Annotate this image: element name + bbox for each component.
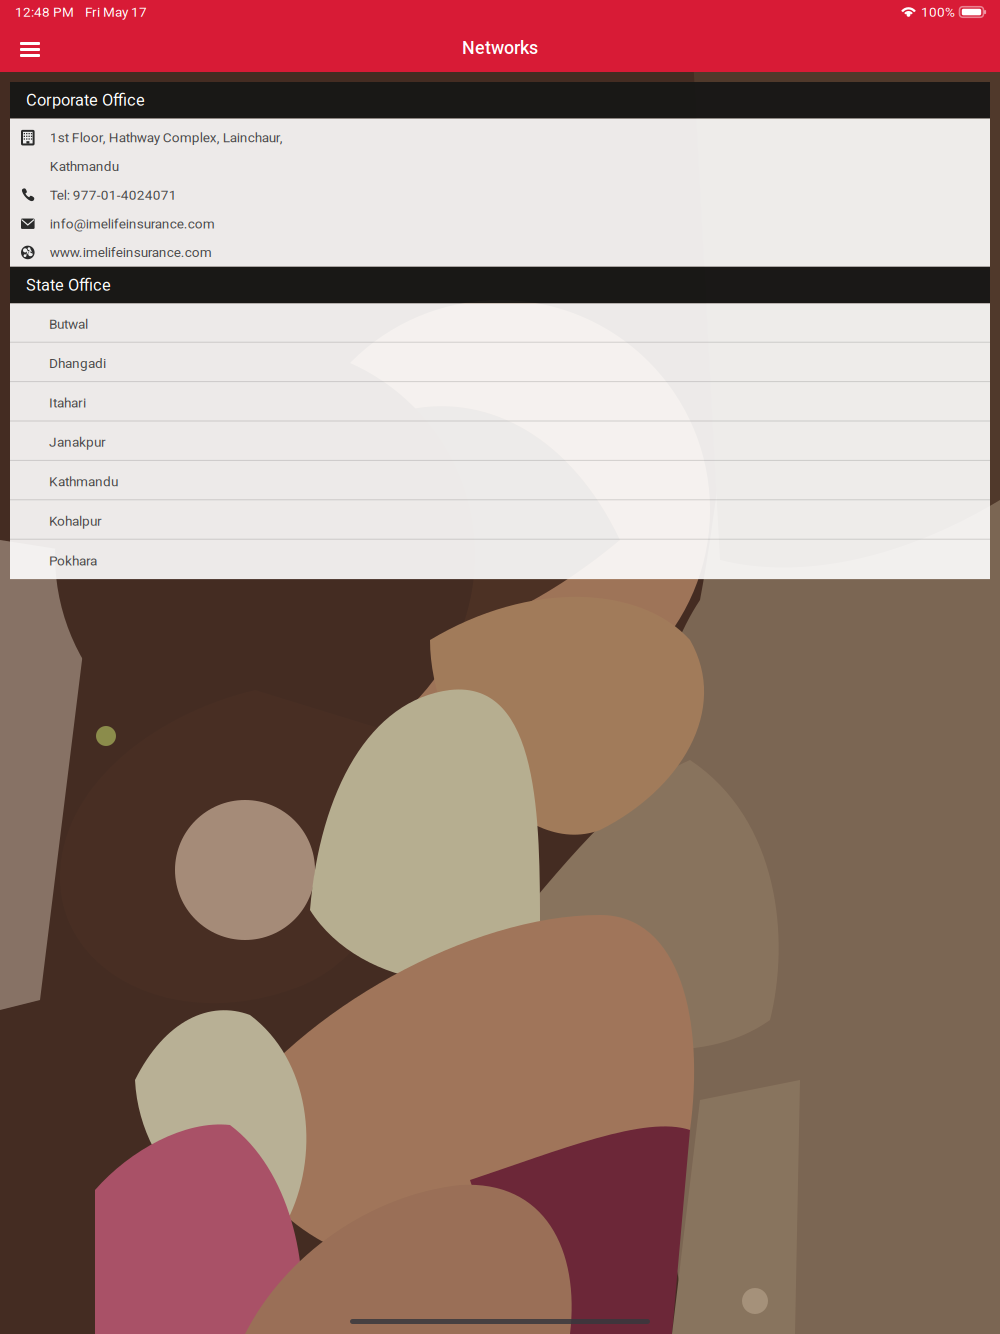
staticText: www.imelifeinsurance.com [50, 244, 212, 260]
staticText: 100% [921, 4, 955, 20]
button[interactable]: Menu [10, 24, 50, 72]
button[interactable]: Butwal [10, 303, 990, 343]
staticText: 12:48 PM [15, 4, 74, 20]
button[interactable]: Itahari [10, 382, 990, 421]
button[interactable]: Kathmandu [10, 461, 990, 500]
staticText: Tel: 977-01-4024071 [50, 187, 177, 203]
staticText: Janakpur [49, 434, 106, 450]
staticText: Pokhara [49, 553, 97, 569]
staticText: State Office [26, 275, 111, 295]
staticText: Networks [462, 37, 538, 58]
staticText: Fri May 17 [85, 4, 147, 20]
staticText: Kohalpur [49, 513, 102, 529]
staticText: Kathmandu [49, 474, 118, 489]
staticText: Kathmandu [50, 158, 119, 174]
button[interactable]: Dhangadi [10, 343, 990, 382]
staticText: Itahari [49, 395, 86, 411]
staticText: 1st Floor, Hathway Complex, Lainchaur, [50, 130, 283, 146]
button[interactable]: Janakpur [10, 421, 990, 461]
staticText: Butwal [49, 316, 88, 332]
staticText: Dhangadi [49, 355, 106, 371]
staticText: Corporate Office [26, 91, 145, 110]
button[interactable]: Kohalpur [10, 500, 990, 540]
button[interactable]: Pokhara [10, 540, 990, 579]
staticText: info@imelifeinsurance.com [50, 216, 215, 232]
